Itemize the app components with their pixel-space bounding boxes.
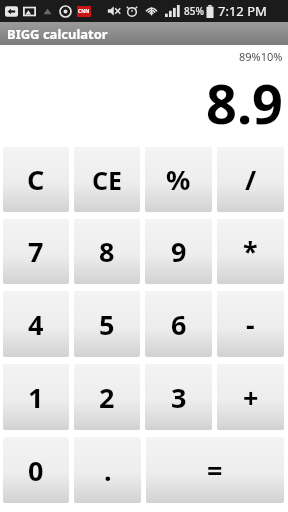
staticText: 1 bbox=[28, 379, 44, 416]
staticText: BIGG calculator bbox=[7, 25, 108, 43]
button[interactable]: CE bbox=[74, 147, 140, 212]
staticText: 7 bbox=[28, 233, 44, 270]
staticText: - bbox=[246, 306, 255, 343]
staticText: % bbox=[166, 161, 191, 198]
button[interactable]: - bbox=[217, 291, 284, 357]
staticText: CE bbox=[92, 163, 123, 197]
button[interactable]: 5 bbox=[74, 291, 140, 357]
staticText: 6 bbox=[171, 306, 187, 343]
staticText: 8.9 bbox=[206, 66, 283, 140]
button[interactable]: 4 bbox=[3, 291, 69, 357]
staticText: CNN bbox=[78, 8, 90, 15]
staticText: 0 bbox=[28, 452, 44, 489]
staticText: 9 bbox=[171, 233, 187, 270]
button[interactable]: 6 bbox=[145, 291, 212, 357]
staticText: / bbox=[245, 161, 257, 198]
staticText: . bbox=[104, 452, 112, 489]
staticText: = bbox=[207, 452, 223, 489]
staticText: 89%10% bbox=[239, 49, 283, 64]
button[interactable]: 8 bbox=[74, 219, 140, 284]
staticText: 8 bbox=[99, 233, 115, 270]
staticText: + bbox=[243, 379, 259, 416]
button[interactable]: = bbox=[146, 437, 284, 503]
staticText: 5 bbox=[99, 306, 115, 343]
button[interactable]: * bbox=[217, 219, 284, 284]
staticText: 3 bbox=[171, 379, 187, 416]
button[interactable]: C bbox=[3, 147, 69, 212]
button[interactable]: 2 bbox=[74, 364, 140, 430]
staticText: 85% bbox=[184, 4, 204, 18]
staticText: C bbox=[27, 161, 45, 198]
button[interactable]: 9 bbox=[145, 219, 212, 284]
button[interactable]: 7 bbox=[3, 219, 69, 284]
button[interactable]: 0 bbox=[3, 437, 69, 503]
button[interactable]: . bbox=[74, 437, 141, 503]
staticText: 4 bbox=[28, 306, 44, 343]
button[interactable]: % bbox=[145, 147, 212, 212]
button[interactable]: 3 bbox=[145, 364, 212, 430]
button[interactable]: + bbox=[217, 364, 284, 430]
button[interactable]: 1 bbox=[3, 364, 69, 430]
staticText: * bbox=[243, 233, 258, 270]
staticText: 2 bbox=[99, 379, 115, 416]
staticText: 7:12 PM bbox=[218, 2, 267, 20]
button[interactable]: / bbox=[217, 147, 284, 212]
